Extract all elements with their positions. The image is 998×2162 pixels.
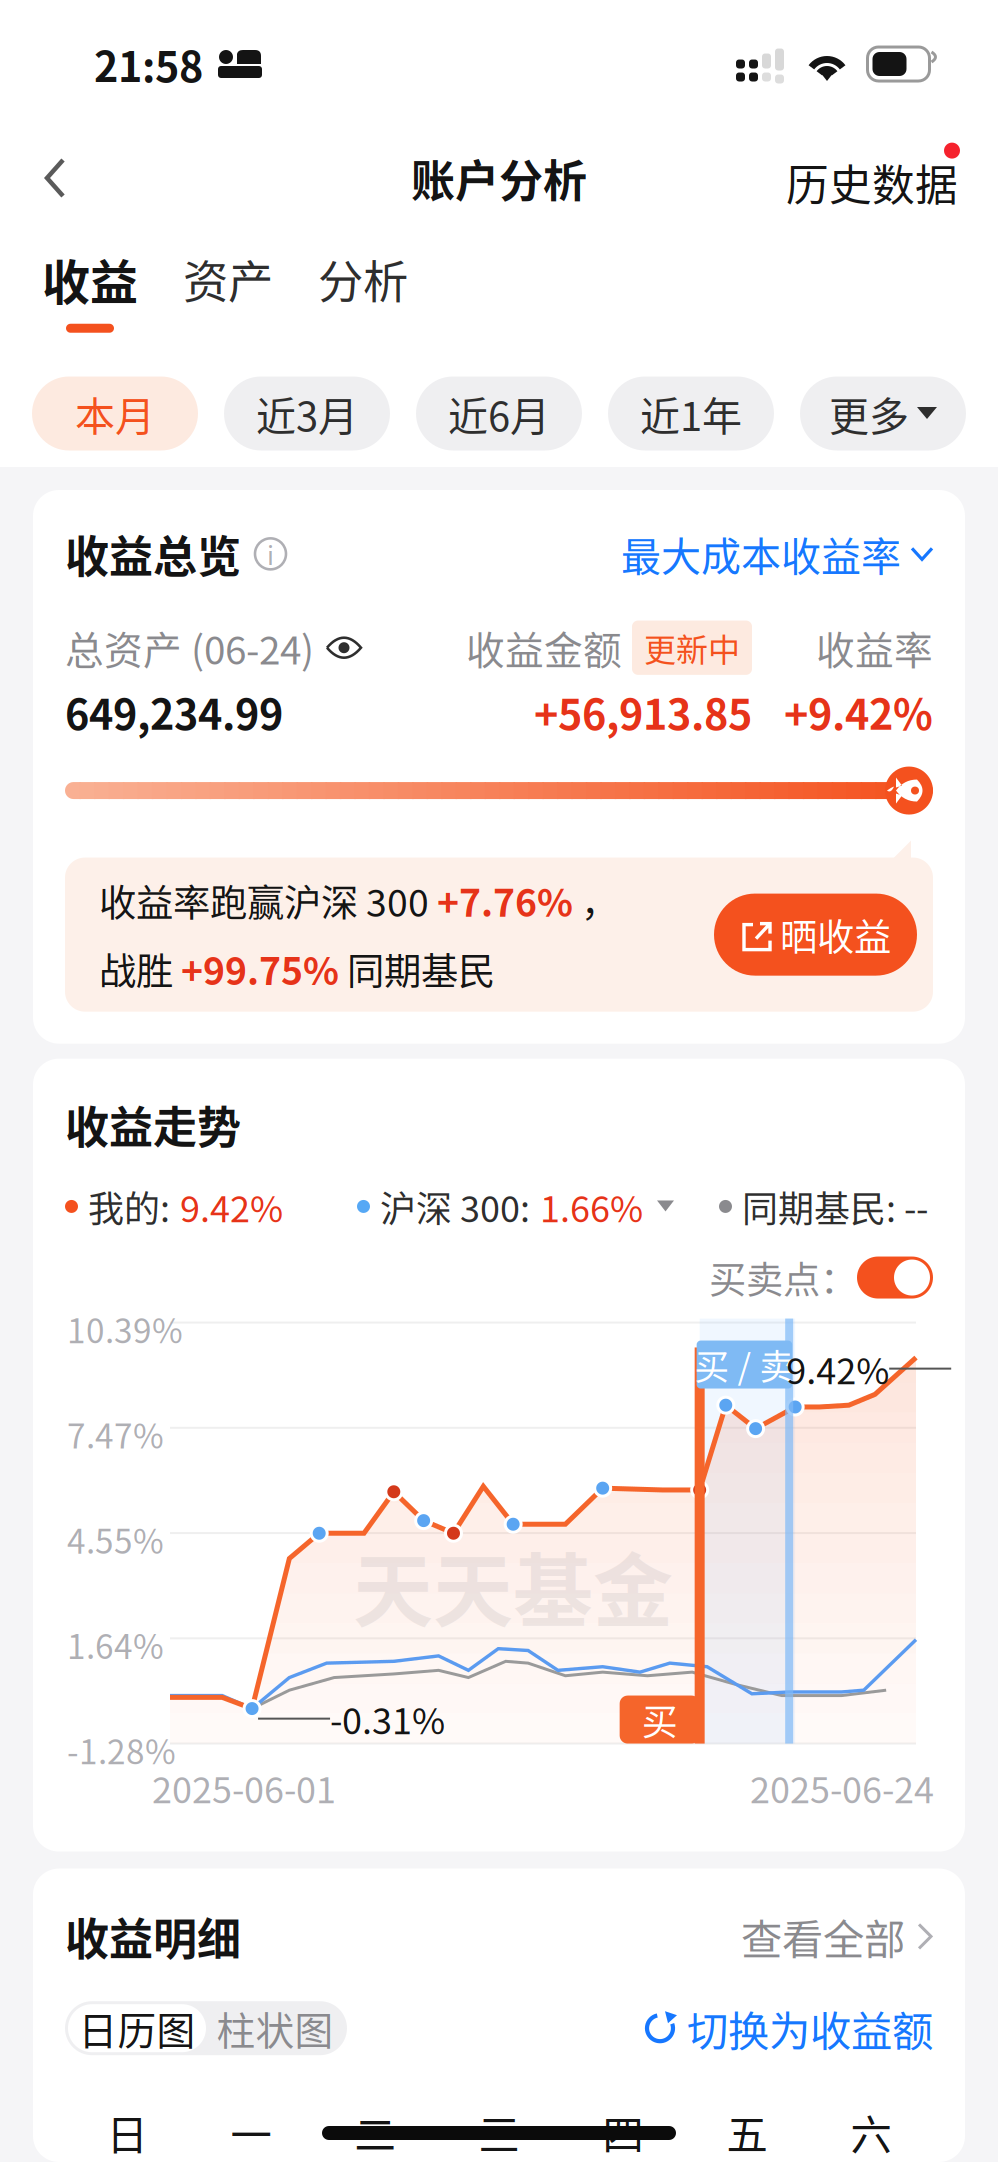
button[interactable]: 更多	[800, 376, 966, 450]
button[interactable]: 本月	[32, 376, 198, 450]
staticText: i	[267, 535, 274, 572]
button[interactable]: 近1年	[608, 376, 774, 450]
staticText: +99.75%	[181, 942, 339, 996]
button[interactable]: 日历图	[68, 2004, 206, 2052]
staticText: 五	[726, 2102, 767, 2162]
staticText: 战胜	[99, 942, 181, 996]
button[interactable]: 收益总览说明	[241, 538, 286, 569]
staticText: 本月	[75, 384, 155, 442]
button[interactable]: 历史数据	[768, 131, 978, 225]
staticText: 收益金额	[466, 620, 622, 676]
staticText: 二	[354, 2102, 395, 2162]
staticText: 同期基民: --	[742, 1180, 928, 1232]
staticText: 7.47%	[67, 1410, 164, 1458]
staticText: 收益率	[816, 620, 933, 676]
staticText: 沪深 300:	[380, 1180, 530, 1232]
button[interactable]: 收益	[40, 244, 140, 333]
staticText: 账户分析	[411, 146, 587, 210]
staticText: 资产	[183, 246, 273, 312]
staticText: 更多	[829, 384, 909, 442]
staticText: 收益明细	[65, 1905, 241, 1968]
button[interactable]: 分析	[275, 244, 410, 312]
staticText: 9.42%	[786, 1343, 889, 1395]
staticText: 柱状图	[216, 2000, 333, 2056]
button[interactable]: 查看全部	[741, 1906, 933, 1966]
staticText: +9.42%	[784, 682, 933, 742]
staticText: 2025-06-24	[750, 1762, 934, 1814]
staticText: 4.55%	[67, 1515, 164, 1563]
staticText: 切换为收益额	[687, 1998, 933, 2058]
staticText: 10.39%	[67, 1305, 183, 1353]
staticText: 更新中	[644, 624, 740, 671]
staticText: 9.42%	[180, 1180, 283, 1232]
staticText: 收益走势	[65, 1093, 241, 1156]
staticText: 收益	[42, 244, 138, 314]
staticText: 收益率跑赢沪深 300	[99, 874, 437, 928]
staticText: 近1年	[640, 384, 742, 442]
staticText: 天天基金	[353, 1527, 673, 1643]
button[interactable]: 近3月	[224, 376, 390, 450]
button[interactable]: 晒收益	[714, 894, 917, 976]
button[interactable]: 最大成本收益率	[621, 525, 933, 583]
button[interactable]: 隐藏金额	[326, 636, 362, 660]
staticText: 收益总览	[65, 522, 241, 586]
staticText: +7.76%	[437, 874, 573, 928]
staticText: -0.31%	[330, 1693, 445, 1745]
staticText: 买 / 卖	[694, 1339, 794, 1390]
button[interactable]: 返回	[16, 135, 94, 221]
staticText: 查看全部	[741, 1906, 905, 1966]
staticText: 21:58	[94, 34, 203, 94]
staticText: 近6月	[448, 384, 550, 442]
staticText: 近3月	[256, 384, 358, 442]
staticText: 最大成本收益率	[621, 525, 901, 583]
staticText: 649,234.99	[65, 682, 283, 742]
staticText: 2025-06-01	[152, 1762, 336, 1814]
button[interactable]: 柱状图	[206, 2004, 344, 2052]
staticText: 日	[106, 2102, 147, 2162]
staticText: 六	[850, 2102, 891, 2162]
staticText: 四	[602, 2102, 643, 2162]
staticText: 三	[478, 2102, 519, 2162]
staticText: 历史数据	[786, 152, 958, 213]
staticText: 1.64%	[67, 1620, 164, 1669]
button[interactable]: 买卖点开关	[857, 1256, 933, 1298]
staticText: 晒收益	[780, 908, 891, 962]
staticText: 日历图	[78, 2000, 195, 2056]
staticText: 我的:	[88, 1180, 170, 1232]
staticText: ，	[573, 874, 618, 928]
button[interactable]: 切换为收益额	[643, 1998, 933, 2058]
staticText: +56,913.85	[534, 682, 752, 742]
staticText: 买	[642, 1693, 678, 1746]
staticText: 买卖点：	[709, 1250, 857, 1305]
staticText: 总资产 (06-24)	[65, 620, 314, 676]
staticText: 一	[230, 2102, 271, 2162]
staticText: 1.66%	[540, 1180, 643, 1232]
staticText: -1.28%	[67, 1726, 176, 1774]
button[interactable]: 近6月	[416, 376, 582, 450]
staticText: 分析	[318, 246, 408, 312]
button[interactable]: 资产	[140, 244, 275, 312]
staticText: 同期基民	[339, 942, 495, 996]
